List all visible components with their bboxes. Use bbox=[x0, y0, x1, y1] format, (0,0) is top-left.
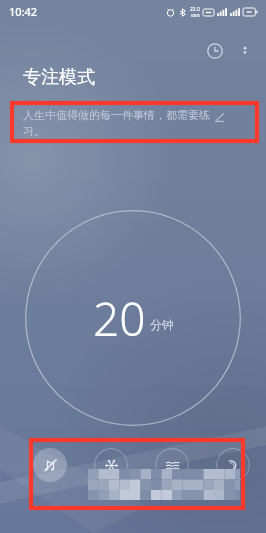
button[interactable]: Snow sound bbox=[94, 448, 128, 482]
button[interactable]: History bbox=[200, 36, 230, 66]
staticText: 分钟 bbox=[150, 317, 174, 332]
staticText: 20 bbox=[93, 287, 146, 350]
button[interactable]: More options bbox=[230, 36, 260, 66]
staticText: 专注模式 bbox=[23, 66, 95, 89]
staticText: 人生中值得做的每一件事情，都需要练习。 bbox=[23, 108, 211, 138]
button[interactable] bbox=[25, 210, 241, 426]
staticText: 10:42 bbox=[9, 4, 38, 19]
button[interactable]: 人生中值得做的每一件事情，都需要练习。 bbox=[23, 108, 226, 138]
staticText: 22.0 bbox=[190, 6, 200, 13]
button[interactable]: Water sound bbox=[155, 448, 189, 482]
staticText: KB/S bbox=[191, 13, 200, 18]
button[interactable]: Mute bbox=[33, 448, 67, 482]
button[interactable]: Bird sound bbox=[216, 448, 250, 482]
